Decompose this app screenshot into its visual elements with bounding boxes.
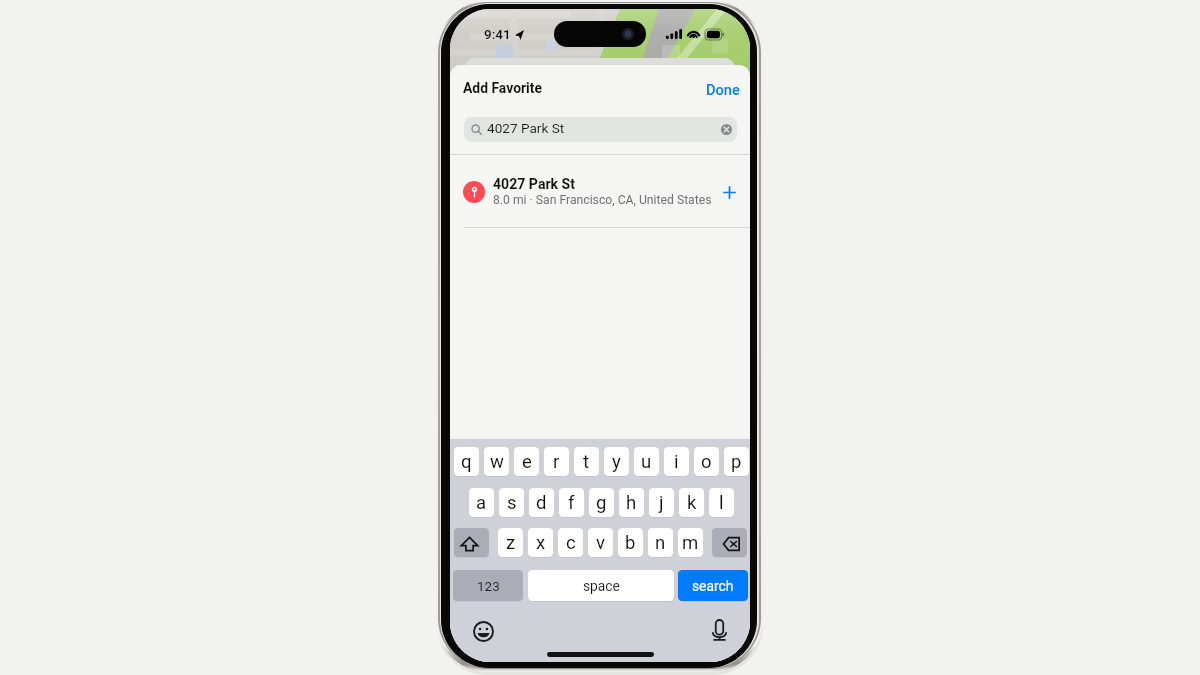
button[interactable]: v: [588, 528, 613, 557]
button[interactable]: Emoji keyboard: [473, 621, 494, 642]
staticText: u: [641, 451, 652, 473]
button[interactable]: Shift: [454, 528, 489, 557]
button[interactable]: Add: [717, 180, 742, 205]
button[interactable]: i: [664, 447, 689, 476]
button[interactable]: f: [559, 488, 584, 517]
button[interactable]: q: [454, 447, 479, 476]
button[interactable]: s: [499, 488, 524, 517]
button[interactable]: n: [648, 528, 673, 557]
staticText: x: [536, 532, 546, 554]
staticText: 8.0 mi · San Francisco, CA, United State…: [493, 193, 712, 207]
staticText: p: [731, 451, 742, 473]
staticText: w: [490, 451, 504, 473]
button[interactable]: r: [544, 447, 569, 476]
button[interactable]: search: [678, 570, 748, 601]
button[interactable]: d: [529, 488, 554, 517]
staticText: b: [625, 532, 636, 554]
staticText: m: [682, 532, 699, 554]
staticText: g: [596, 492, 607, 514]
button[interactable]: b: [618, 528, 643, 557]
staticText: c: [566, 532, 576, 554]
button[interactable]: a: [469, 488, 494, 517]
button[interactable]: Backspace: [712, 528, 747, 557]
button[interactable]: l: [709, 488, 734, 517]
button[interactable]: u: [634, 447, 659, 476]
staticText: d: [536, 492, 547, 514]
button[interactable]: 123: [453, 570, 523, 601]
staticText: Add Favorite: [463, 80, 542, 96]
button[interactable]: w: [484, 447, 509, 476]
staticText: l: [719, 492, 724, 514]
button[interactable]: h: [619, 488, 644, 517]
staticText: 123: [477, 578, 500, 594]
staticText: i: [674, 451, 679, 473]
staticText: j: [659, 492, 664, 514]
button[interactable]: z: [498, 528, 523, 557]
button[interactable]: o: [694, 447, 719, 476]
staticText: q: [461, 451, 472, 473]
staticText: Done: [706, 81, 740, 98]
button[interactable]: m: [678, 528, 703, 557]
staticText: space: [583, 578, 620, 594]
staticText: v: [596, 532, 605, 554]
staticText: a: [476, 492, 487, 514]
staticText: r: [553, 451, 560, 473]
button[interactable]: c: [558, 528, 583, 557]
button[interactable]: k: [679, 488, 704, 517]
staticText: k: [687, 492, 697, 514]
staticText: s: [507, 492, 517, 514]
button[interactable]: g: [589, 488, 614, 517]
button[interactable]: 4027 Park St: [464, 117, 737, 142]
staticText: h: [626, 492, 637, 514]
staticText: search: [692, 578, 734, 594]
staticText: e: [522, 451, 532, 473]
button[interactable]: t: [574, 447, 599, 476]
button[interactable]: p: [724, 447, 749, 476]
button[interactable]: Done: [701, 78, 745, 101]
staticText: z: [506, 532, 516, 554]
staticText: t: [583, 451, 590, 473]
staticText: n: [655, 532, 666, 554]
button[interactable]: j: [649, 488, 674, 517]
button[interactable]: y: [604, 447, 629, 476]
staticText: 9:41: [484, 26, 511, 42]
button[interactable]: space: [528, 570, 674, 601]
staticText: 4027 Park St: [493, 176, 576, 193]
staticText: y: [612, 451, 621, 473]
button[interactable]: Clear text: [721, 124, 732, 135]
staticText: 4027 Park St: [487, 120, 565, 136]
button[interactable]: Dictation: [712, 620, 727, 641]
staticText: o: [701, 451, 712, 473]
staticText: f: [568, 492, 575, 514]
button[interactable]: e: [514, 447, 539, 476]
button[interactable]: x: [528, 528, 553, 557]
